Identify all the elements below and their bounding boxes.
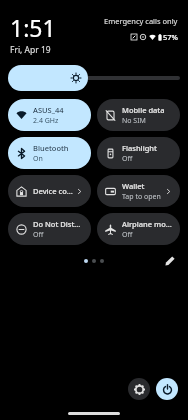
staticText: Mobile data [122, 105, 165, 115]
staticText: Bluetooth [33, 143, 69, 153]
staticText: Tap to open [122, 192, 161, 202]
staticText: 57% [163, 32, 178, 42]
button[interactable]: Power [156, 378, 178, 400]
button[interactable]: Do Not Disturb [8, 213, 91, 245]
staticText: 2.4 GHz [33, 116, 59, 126]
staticText: Device controls [33, 186, 76, 196]
staticText: Off [33, 230, 44, 240]
staticText: Do Not Disturb [33, 219, 85, 229]
button[interactable]: ASUS_44 [8, 99, 91, 131]
button[interactable]: Flashlight [97, 137, 180, 169]
button[interactable] [8, 65, 180, 91]
staticText: Wallet [122, 181, 145, 191]
button[interactable]: Edit tiles [162, 254, 178, 268]
button[interactable]: Settings [128, 378, 150, 400]
staticText: Off [122, 154, 133, 164]
button[interactable]: Mobile data [97, 99, 180, 131]
button[interactable]: Bluetooth [8, 137, 91, 169]
button[interactable]: Airplane mode [97, 213, 180, 245]
staticText: Airplane mode [122, 219, 174, 229]
staticText: 1:51 [10, 12, 56, 43]
staticText: Off [122, 230, 133, 240]
staticText: ASUS_44 [33, 105, 64, 115]
staticText: Fri, Apr 19 [10, 44, 51, 56]
staticText: Flashlight [122, 143, 157, 153]
staticText: On [33, 154, 43, 164]
staticText: Emergency calls only [104, 16, 178, 26]
button[interactable]: Device controls [8, 175, 91, 207]
staticText: No SIM [122, 116, 146, 126]
button[interactable]: Wallet [97, 175, 180, 207]
